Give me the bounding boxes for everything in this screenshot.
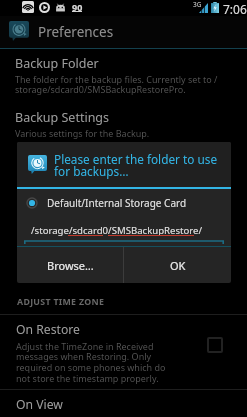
staticText: OK <box>170 258 186 273</box>
button[interactable]: Preferences <box>0 16 247 48</box>
button[interactable]: On View <box>0 390 247 413</box>
staticText: 90 <box>72 1 83 13</box>
staticText: Backup Folder <box>15 55 99 72</box>
staticText: 7:06 <box>223 1 247 17</box>
staticText: Browse… <box>47 258 94 273</box>
staticText: On View <box>16 396 63 413</box>
staticText: Preferences <box>38 23 114 41</box>
staticText: Backup Settings <box>15 109 110 126</box>
staticText: The folder for the backup files. Current… <box>15 73 239 96</box>
staticText: On Restore <box>16 321 80 338</box>
staticText: 3G <box>193 0 202 9</box>
button[interactable]: Browse… <box>17 247 123 283</box>
staticText: /storage/sdcard0/SMSBackupRestore/ <box>31 224 203 237</box>
staticText: Adjust the TimeZone in Received messages… <box>16 340 168 385</box>
staticText: ADJUST TIME ZONE <box>17 296 105 308</box>
button[interactable]: On Restore <box>0 315 247 389</box>
button[interactable]: Backup Folder <box>0 55 247 96</box>
staticText: Default/Internal Storage Card <box>47 196 187 210</box>
staticText: Please enter the folder to use for backu… <box>54 151 218 180</box>
button[interactable]: OK <box>124 247 231 283</box>
button[interactable]: Default/Internal Storage Card <box>17 189 231 216</box>
staticText: Various settings for the Backup. <box>15 127 150 139</box>
button[interactable]: Backup Settings <box>0 109 247 139</box>
